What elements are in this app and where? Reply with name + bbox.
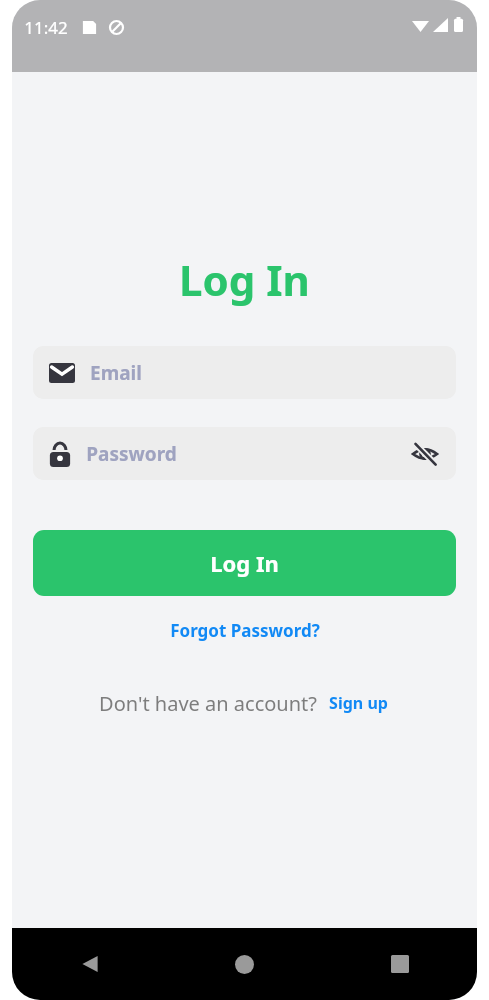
staticText: Sign up (329, 692, 388, 714)
button[interactable]: Email (33, 346, 456, 399)
button[interactable]: Password (33, 427, 456, 480)
staticText: 11:42 (24, 16, 68, 39)
button[interactable]: Recent apps (322, 928, 477, 1000)
staticText: Log In (210, 548, 279, 578)
button[interactable]: Show password (408, 437, 442, 471)
staticText: Password (86, 441, 177, 467)
button[interactable]: Sign up (326, 689, 391, 717)
button[interactable]: Back (12, 928, 167, 1000)
staticText: Don't have an account? (99, 690, 317, 717)
button[interactable]: Log In (33, 530, 456, 596)
staticText: Email (90, 360, 142, 386)
staticText: Log In (179, 251, 310, 308)
staticText: Forgot Password? (170, 619, 320, 642)
button[interactable]: Forgot Password? (162, 614, 328, 647)
button[interactable]: Home (167, 928, 322, 1000)
